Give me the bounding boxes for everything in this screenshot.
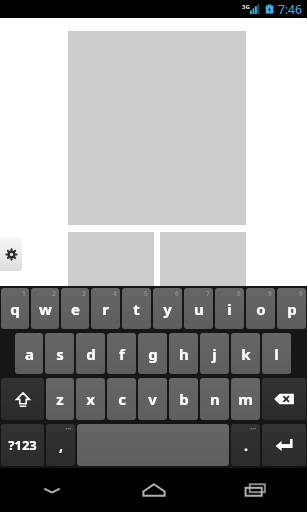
staticText: d xyxy=(86,344,96,364)
button[interactable]: i xyxy=(215,288,244,329)
button[interactable]: , xyxy=(46,424,75,466)
staticText: s xyxy=(56,344,64,364)
staticText: , xyxy=(59,436,63,455)
button[interactable]: o xyxy=(246,288,275,329)
button[interactable]: g xyxy=(138,333,167,374)
staticText: 7:46 xyxy=(278,1,302,17)
button[interactable]: t xyxy=(122,288,151,329)
staticText: t xyxy=(133,299,140,319)
staticText: b xyxy=(179,389,189,409)
staticText: m xyxy=(238,389,253,409)
staticText: z xyxy=(56,389,64,409)
staticText: g xyxy=(148,344,158,364)
button[interactable]: . xyxy=(231,424,260,466)
staticText: ⋯ xyxy=(250,425,257,433)
staticText: ⋯ xyxy=(65,425,72,433)
staticText: 8 xyxy=(237,289,241,298)
staticText: u xyxy=(194,299,204,319)
staticText: 9 xyxy=(268,289,272,298)
staticText: r xyxy=(102,299,109,319)
staticText: e xyxy=(71,299,80,319)
button[interactable]: m xyxy=(231,378,260,420)
button[interactable]: v xyxy=(138,378,167,420)
button[interactable]: c xyxy=(107,378,136,420)
button[interactable]: Recent apps xyxy=(205,468,307,512)
button[interactable]: ?123 xyxy=(1,424,44,466)
button[interactable]: j xyxy=(200,333,229,374)
staticText: x xyxy=(86,389,95,409)
staticText: a xyxy=(25,344,34,364)
button[interactable]: Hide keyboard xyxy=(0,468,103,512)
staticText: l xyxy=(274,344,279,364)
staticText: h xyxy=(179,344,189,364)
button[interactable]: e xyxy=(61,288,89,329)
staticText: p xyxy=(287,299,297,319)
button[interactable]: l xyxy=(262,333,291,374)
staticText: o xyxy=(256,299,266,319)
button[interactable]: w xyxy=(31,288,59,329)
button[interactable]: u xyxy=(184,288,213,329)
button[interactable]: b xyxy=(169,378,198,420)
button[interactable]: n xyxy=(200,378,229,420)
staticText: 0 xyxy=(299,289,303,298)
button[interactable]: f xyxy=(107,333,136,374)
button[interactable]: Settings xyxy=(0,237,22,271)
staticText: 4 xyxy=(113,289,117,298)
button[interactable]: x xyxy=(76,378,105,420)
staticText: j xyxy=(212,344,217,364)
staticText: k xyxy=(241,344,251,364)
button[interactable]: a xyxy=(15,333,43,374)
staticText: 7 xyxy=(206,289,210,298)
staticText: 2 xyxy=(52,289,56,298)
staticText: 3G xyxy=(242,3,250,11)
staticText: 5 xyxy=(144,289,148,298)
staticText: q xyxy=(10,299,20,319)
staticText: 3 xyxy=(82,289,86,298)
staticText: ?123 xyxy=(8,436,37,454)
button[interactable]: Enter xyxy=(262,424,306,466)
staticText: 1 xyxy=(22,289,26,298)
button[interactable]: Shift xyxy=(1,378,44,420)
staticText: . xyxy=(244,436,248,455)
staticText: w xyxy=(39,299,52,319)
staticText: f xyxy=(119,344,125,364)
staticText: n xyxy=(210,389,220,409)
button[interactable]: d xyxy=(76,333,105,374)
button[interactable] xyxy=(77,424,229,466)
button[interactable]: p xyxy=(277,288,306,329)
button[interactable]: Backspace xyxy=(262,378,306,420)
staticText: y xyxy=(163,299,172,319)
staticText: i xyxy=(227,299,232,319)
staticText: v xyxy=(148,389,157,409)
button[interactable]: k xyxy=(231,333,260,374)
staticText: 6 xyxy=(175,289,179,298)
button[interactable]: Home xyxy=(103,468,205,512)
button[interactable]: r xyxy=(91,288,120,329)
staticText: c xyxy=(118,389,126,409)
button[interactable]: z xyxy=(46,378,74,420)
button[interactable]: h xyxy=(169,333,198,374)
button[interactable]: y xyxy=(153,288,182,329)
button[interactable]: s xyxy=(45,333,74,374)
button[interactable]: q xyxy=(1,288,29,329)
